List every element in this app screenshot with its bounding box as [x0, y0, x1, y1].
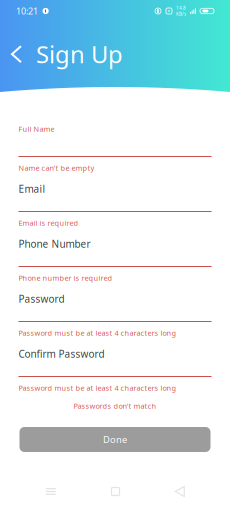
button[interactable]: Home	[101, 477, 129, 505]
staticText: 10:21	[16, 5, 38, 17]
staticText: Password must be at least 4 characters l…	[18, 383, 176, 393]
button[interactable]: Password	[18, 283, 211, 338]
staticText: Sign Up	[36, 38, 123, 70]
button[interactable]: Confirm Password	[18, 338, 211, 393]
staticText: Phone Number	[18, 237, 90, 251]
staticText: Password	[18, 292, 64, 306]
staticText: Done	[103, 433, 127, 446]
button[interactable]: Full Name	[18, 118, 211, 173]
staticText: Name can't be empty	[18, 163, 94, 173]
staticText: Password must be at least 4 characters l…	[18, 328, 176, 338]
staticText: Confirm Password	[18, 347, 104, 361]
button[interactable]: Back	[6, 39, 27, 69]
staticText: KB/s	[176, 11, 186, 17]
staticText: Full Name	[18, 124, 54, 134]
staticText: Email	[18, 182, 45, 196]
button[interactable]: Phone Number	[18, 228, 211, 283]
staticText: Phone number is required	[18, 273, 112, 283]
button[interactable]: Recent apps	[36, 478, 66, 505]
staticText: 14.8	[176, 5, 186, 11]
staticText: Email is required	[18, 218, 78, 228]
button[interactable]: Done	[19, 427, 210, 452]
button[interactable]: Email	[18, 173, 211, 228]
button[interactable]: Back	[165, 476, 194, 506]
staticText: Passwords don't match	[73, 401, 156, 411]
